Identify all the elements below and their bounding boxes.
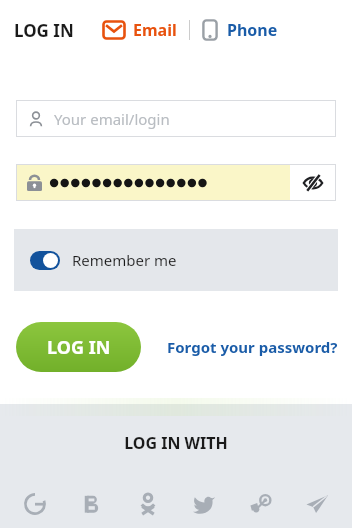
button[interactable]: Telegram bbox=[295, 482, 339, 526]
button[interactable] bbox=[16, 164, 290, 201]
button[interactable]: Forgot your password? bbox=[163, 333, 342, 361]
staticText: LOG IN bbox=[14, 19, 74, 42]
button[interactable]: LOG IN bbox=[16, 322, 141, 372]
button[interactable]: Email bbox=[100, 13, 179, 47]
button[interactable]: Your email/login bbox=[16, 100, 336, 137]
button[interactable]: Odnoklassniki bbox=[126, 482, 170, 526]
staticText: Your email/login bbox=[54, 109, 170, 129]
staticText: Remember me bbox=[72, 250, 177, 270]
button[interactable]: VK bbox=[69, 482, 113, 526]
button[interactable]: Steam bbox=[239, 482, 283, 526]
button[interactable]: Google bbox=[13, 482, 57, 526]
button[interactable]: Phone bbox=[200, 13, 280, 47]
staticText: Phone bbox=[227, 19, 278, 41]
staticText: Forgot your password? bbox=[167, 337, 338, 357]
staticText: LOG IN bbox=[47, 335, 111, 360]
staticText: LOG IN WITH bbox=[0, 432, 352, 454]
button[interactable]: Remember me bbox=[14, 229, 338, 291]
button[interactable]: Twitter bbox=[182, 482, 226, 526]
staticText: Email bbox=[133, 19, 177, 41]
button[interactable]: Show password bbox=[290, 164, 336, 201]
